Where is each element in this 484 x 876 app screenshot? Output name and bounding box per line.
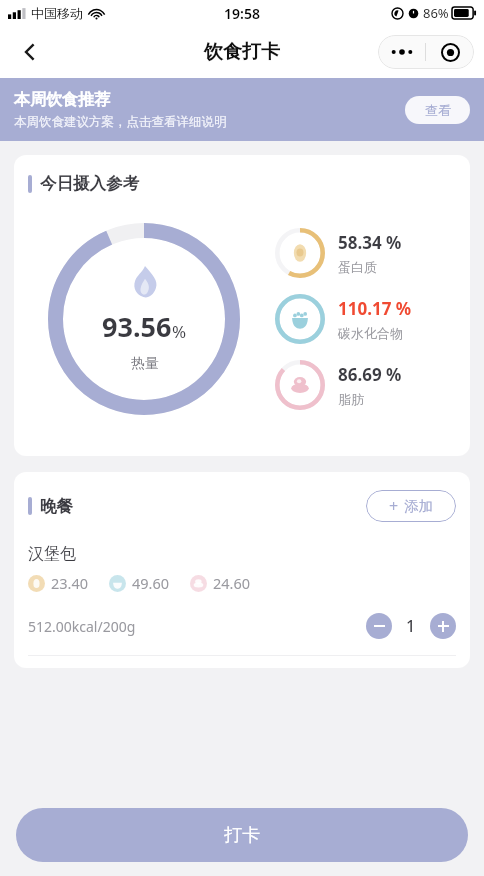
staticText: 86% (423, 4, 449, 22)
staticText: 49.60 (132, 573, 170, 593)
button[interactable]: 减少 (366, 613, 392, 639)
staticText: 110.17 % (338, 297, 412, 320)
staticText: 今日摄入参考 (40, 173, 139, 194)
staticText: 23.40 (51, 573, 89, 593)
staticText: 打卡 (224, 824, 260, 847)
staticText: 24.60 (213, 573, 251, 593)
staticText: % (172, 320, 187, 343)
staticText: + (389, 495, 399, 517)
staticText: 中国移动 (31, 5, 83, 21)
staticText: 512.00kcal/200g (28, 617, 136, 636)
button[interactable]: 关闭 (426, 35, 474, 69)
staticText: 93.56 (102, 308, 172, 345)
button[interactable]: 查看 (405, 96, 470, 124)
staticText: 58.34 % (338, 231, 402, 254)
button[interactable]: 打卡 (16, 808, 468, 862)
staticText: 热量 (131, 355, 159, 373)
staticText: 本周饮食建议方案，点击查看详细说明 (14, 114, 227, 130)
button[interactable]: 返回 (8, 30, 52, 74)
staticText: 碳水化合物 (338, 325, 403, 341)
staticText: 晚餐 (40, 496, 73, 517)
staticText: 饮食打卡 (204, 40, 280, 64)
staticText: 蛋白质 (338, 259, 377, 275)
staticText: 汉堡包 (28, 544, 76, 564)
staticText: 1 (406, 615, 416, 637)
staticText: 本周饮食推荐 (14, 90, 110, 110)
staticText: 添加 (404, 497, 433, 515)
button[interactable]: 更多 (378, 35, 425, 69)
button[interactable]: 增加 (430, 613, 456, 639)
staticText: 脂肪 (338, 391, 364, 407)
staticText: 19:58 (224, 4, 260, 23)
staticText: 86.69 % (338, 363, 402, 386)
button[interactable]: + (366, 490, 456, 522)
staticText: 查看 (425, 102, 451, 118)
button[interactable]: 本周饮食推荐 (0, 78, 484, 141)
